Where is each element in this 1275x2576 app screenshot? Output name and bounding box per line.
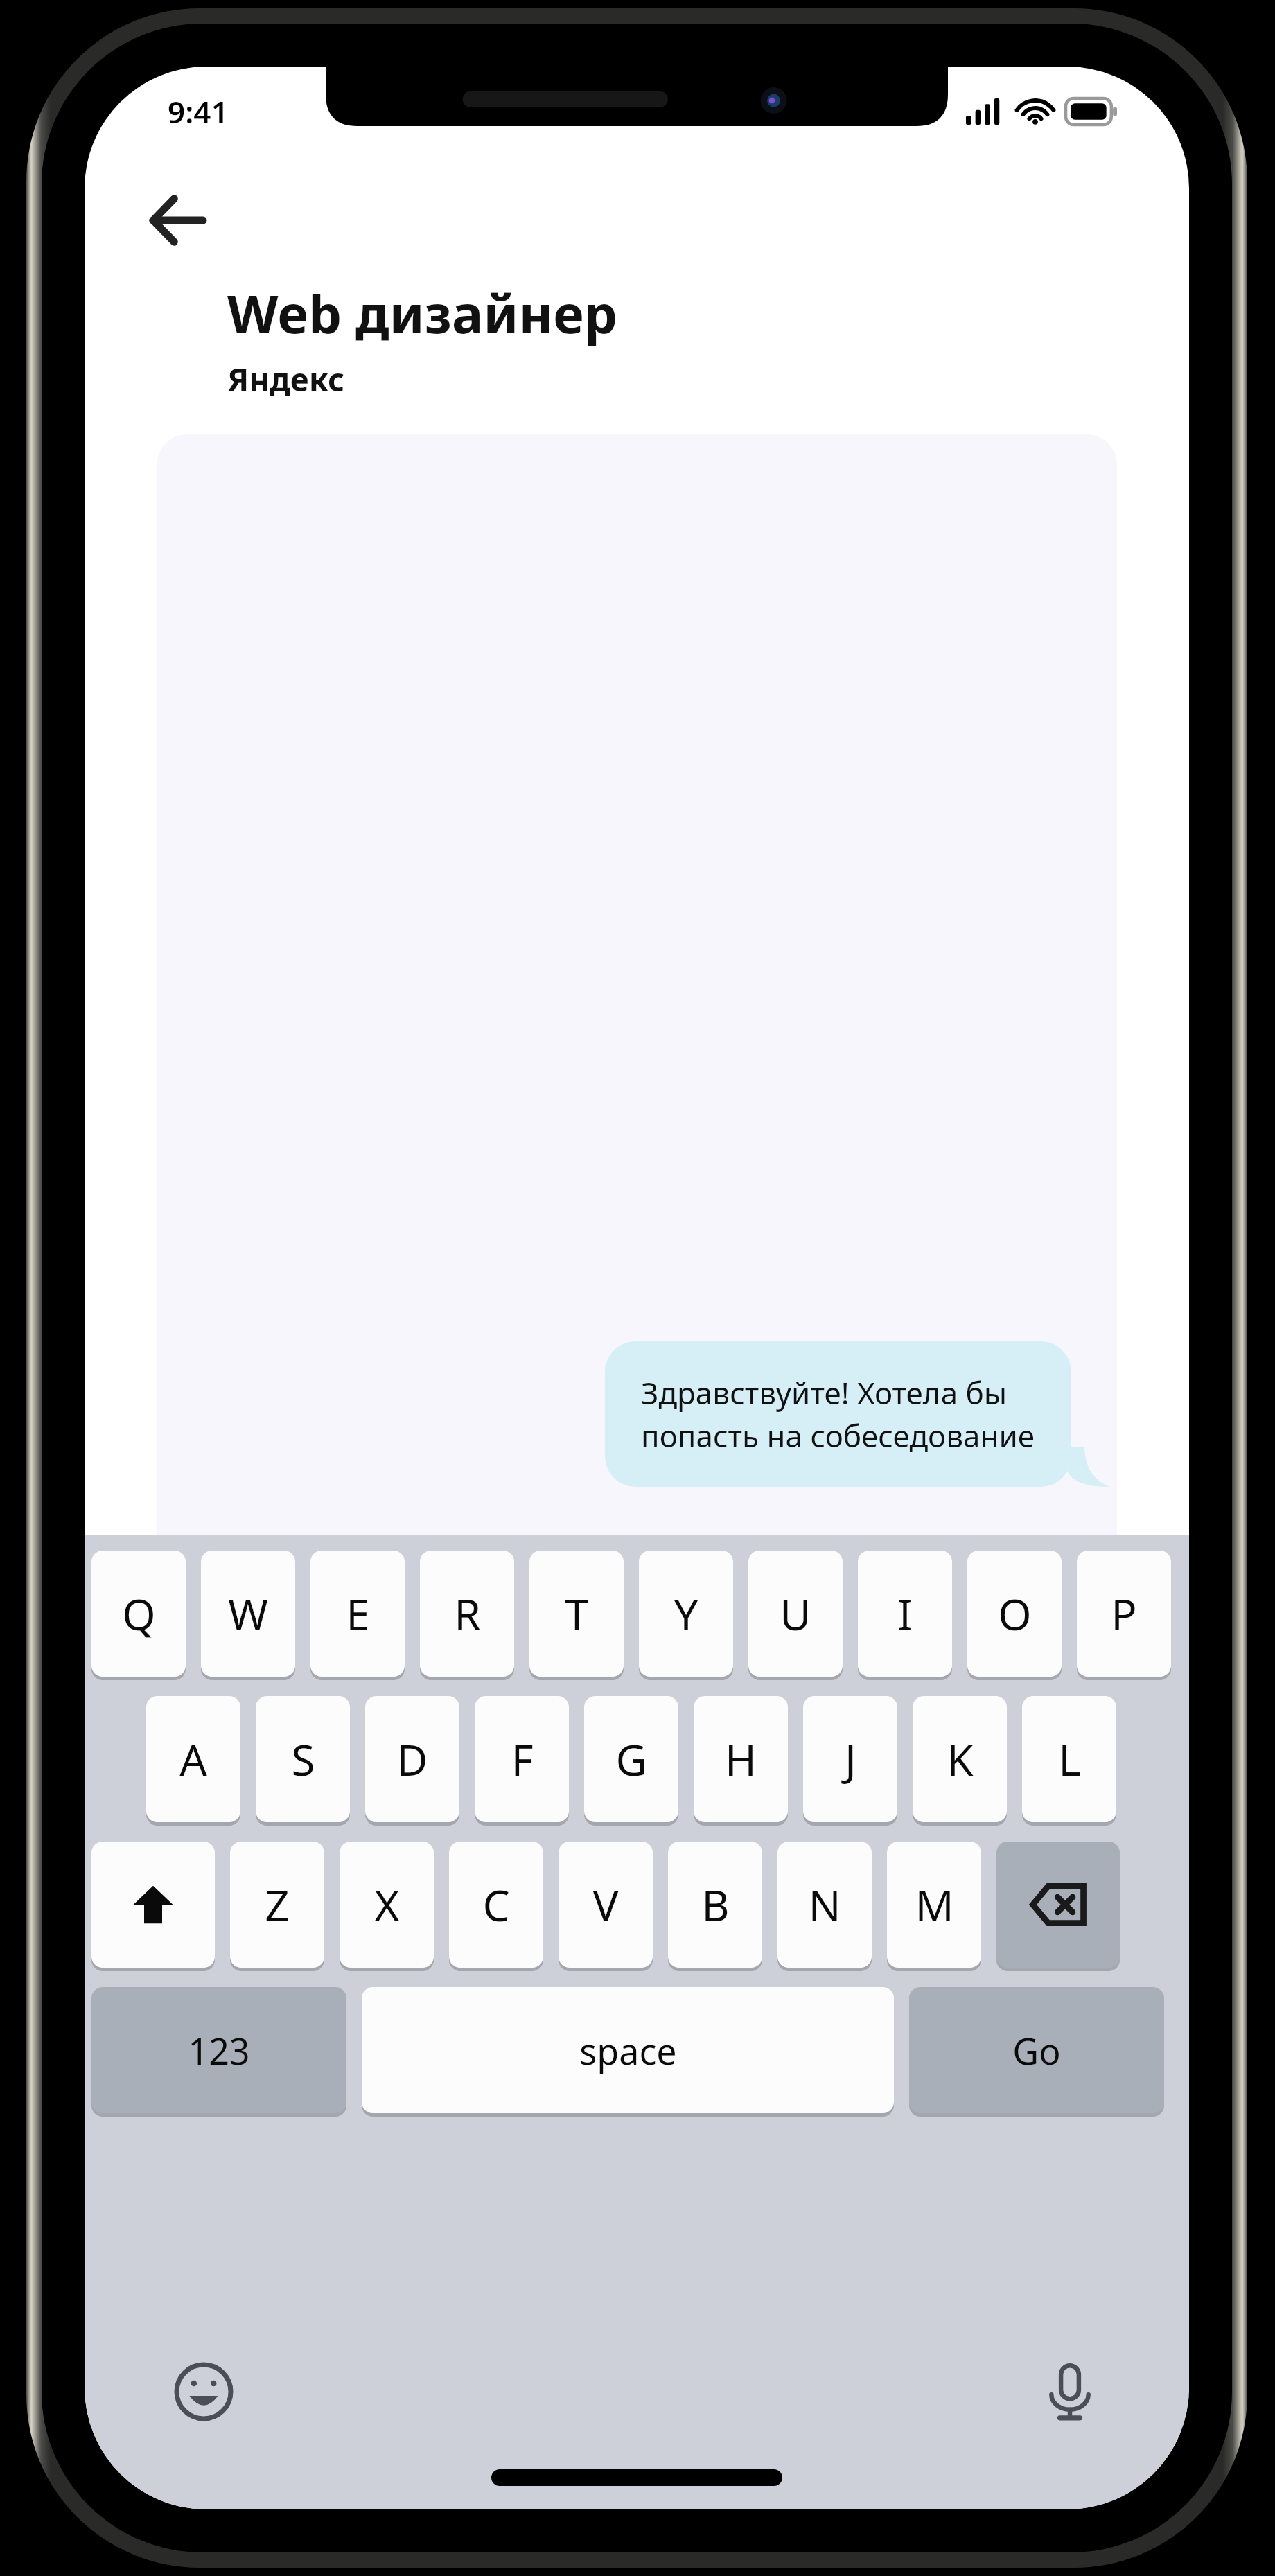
- button[interactable]: Voice input: [1026, 2347, 1114, 2436]
- button[interactable]: L: [1022, 1696, 1116, 1822]
- button[interactable]: Z: [230, 1842, 324, 1968]
- other: Backspace: [996, 1842, 1120, 1968]
- button[interactable]: Key: [996, 1842, 1120, 1968]
- button[interactable]: W: [201, 1551, 295, 1677]
- staticText: N: [808, 1876, 841, 1934]
- staticText: X: [374, 1876, 400, 1934]
- button[interactable]: J: [803, 1696, 897, 1822]
- button[interactable]: D: [365, 1696, 459, 1822]
- button[interactable]: 123: [91, 1987, 346, 2113]
- staticText: M: [915, 1876, 954, 1934]
- staticText: T: [565, 1585, 589, 1643]
- staticText: 123: [188, 2026, 250, 2075]
- button[interactable]: M: [887, 1842, 981, 1968]
- staticText: Яндекс: [227, 358, 345, 401]
- staticText: Q: [122, 1585, 156, 1643]
- staticText: Y: [674, 1585, 698, 1643]
- staticText: A: [179, 1730, 207, 1788]
- staticText: Здравствуйте! Хотела бы попасть на собес…: [641, 1372, 1035, 1456]
- staticText: B: [701, 1876, 730, 1934]
- button[interactable]: Y: [639, 1551, 733, 1677]
- staticText: J: [845, 1730, 856, 1788]
- button[interactable]: C: [449, 1842, 543, 1968]
- staticText: E: [346, 1585, 370, 1643]
- button[interactable]: T: [529, 1551, 624, 1677]
- staticText: O: [998, 1585, 1032, 1643]
- staticText: L: [1058, 1730, 1081, 1788]
- button[interactable]: Здравствуйте! Хотела бы попасть на собес…: [605, 1341, 1071, 1487]
- button[interactable]: A: [146, 1696, 240, 1822]
- button[interactable]: K: [913, 1696, 1007, 1822]
- staticText: H: [725, 1730, 757, 1788]
- button[interactable]: R: [420, 1551, 514, 1677]
- button[interactable]: S: [256, 1696, 350, 1822]
- staticText: Web дизайнер: [227, 277, 617, 349]
- staticText: S: [291, 1730, 315, 1788]
- staticText: I: [897, 1585, 913, 1643]
- staticText: C: [482, 1876, 510, 1934]
- staticText: U: [780, 1585, 811, 1643]
- button[interactable]: P: [1077, 1551, 1171, 1677]
- button[interactable]: Q: [91, 1551, 186, 1677]
- staticText: W: [228, 1585, 268, 1643]
- button[interactable]: G: [584, 1696, 678, 1822]
- button[interactable]: V: [559, 1842, 653, 1968]
- staticText: 9:41: [168, 91, 229, 132]
- button[interactable]: Go: [909, 1987, 1164, 2113]
- button[interactable]: U: [748, 1551, 843, 1677]
- button[interactable]: E: [310, 1551, 405, 1677]
- button[interactable]: Emoji keyboard: [159, 2347, 248, 2436]
- staticText: F: [511, 1730, 534, 1788]
- button[interactable]: H: [694, 1696, 788, 1822]
- button[interactable]: Back: [134, 177, 220, 263]
- staticText: Go: [1012, 2026, 1061, 2075]
- staticText: Z: [265, 1876, 290, 1934]
- staticText: V: [592, 1876, 619, 1934]
- staticText: G: [615, 1730, 647, 1788]
- button[interactable]: X: [340, 1842, 434, 1968]
- button[interactable]: F: [475, 1696, 569, 1822]
- button[interactable]: B: [668, 1842, 762, 1968]
- staticText: D: [396, 1730, 428, 1788]
- button[interactable]: Key: [91, 1842, 215, 1968]
- button[interactable]: I: [858, 1551, 952, 1677]
- staticText: P: [1111, 1585, 1137, 1643]
- staticText: R: [454, 1585, 481, 1643]
- staticText: space: [579, 2026, 677, 2075]
- staticText: K: [947, 1730, 974, 1788]
- button[interactable]: O: [967, 1551, 1062, 1677]
- button[interactable]: space: [362, 1987, 894, 2113]
- button[interactable]: N: [777, 1842, 872, 1968]
